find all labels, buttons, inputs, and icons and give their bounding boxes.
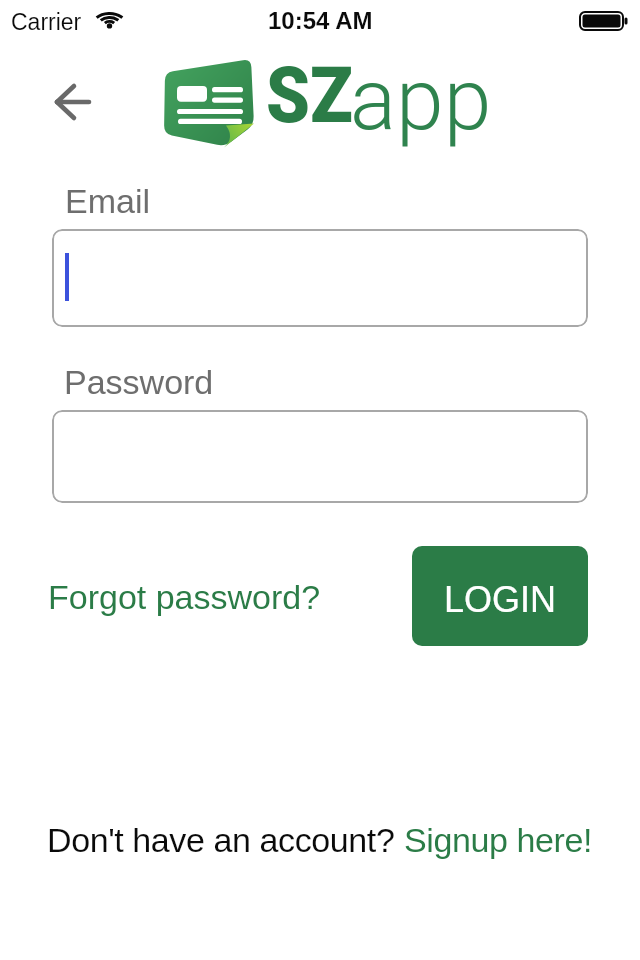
button[interactable]: LOGIN xyxy=(412,546,588,646)
button[interactable]: Forgot password? xyxy=(48,578,321,616)
button[interactable] xyxy=(52,229,588,327)
staticText: 10:54 AM xyxy=(268,7,373,34)
button[interactable]: Signup here! xyxy=(404,821,593,859)
staticText: Email xyxy=(65,182,151,220)
staticText: app xyxy=(350,49,491,149)
staticText: Carrier xyxy=(11,9,82,35)
staticText: Don't have an account? xyxy=(47,821,404,859)
staticText: SZ xyxy=(266,50,353,141)
button[interactable] xyxy=(52,410,588,503)
staticText: LOGIN xyxy=(444,579,557,619)
staticText: Password xyxy=(64,363,214,401)
button[interactable] xyxy=(45,74,101,130)
